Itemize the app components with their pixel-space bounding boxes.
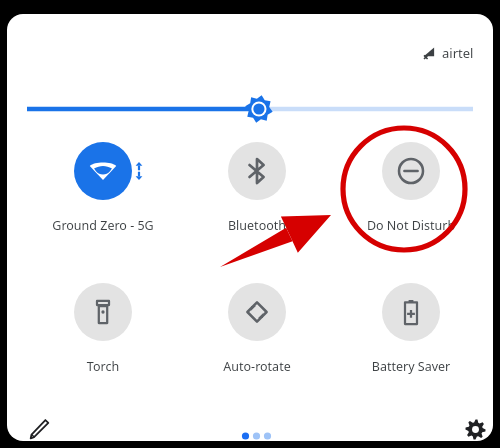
button[interactable]: Do Not Disturb bbox=[345, 140, 477, 234]
staticText: Auto-rotate bbox=[191, 358, 323, 375]
staticText: Bluetooth bbox=[191, 217, 323, 234]
button[interactable]: Battery Saver bbox=[345, 281, 477, 375]
button[interactable]: Bluetooth bbox=[191, 140, 323, 234]
button[interactable]: Ground Zero - 5G bbox=[37, 140, 169, 234]
staticText: Torch bbox=[37, 358, 169, 375]
staticText: Do Not Disturb bbox=[345, 217, 477, 234]
button[interactable]: Settings bbox=[453, 407, 493, 441]
button[interactable] bbox=[27, 92, 473, 126]
button[interactable]: Edit bbox=[17, 407, 61, 441]
button[interactable]: Torch bbox=[37, 281, 169, 375]
staticText: airtel bbox=[442, 44, 474, 62]
staticText: Ground Zero - 5G bbox=[37, 217, 169, 234]
staticText: Battery Saver bbox=[345, 358, 477, 375]
button[interactable]: Auto-rotate bbox=[191, 281, 323, 375]
